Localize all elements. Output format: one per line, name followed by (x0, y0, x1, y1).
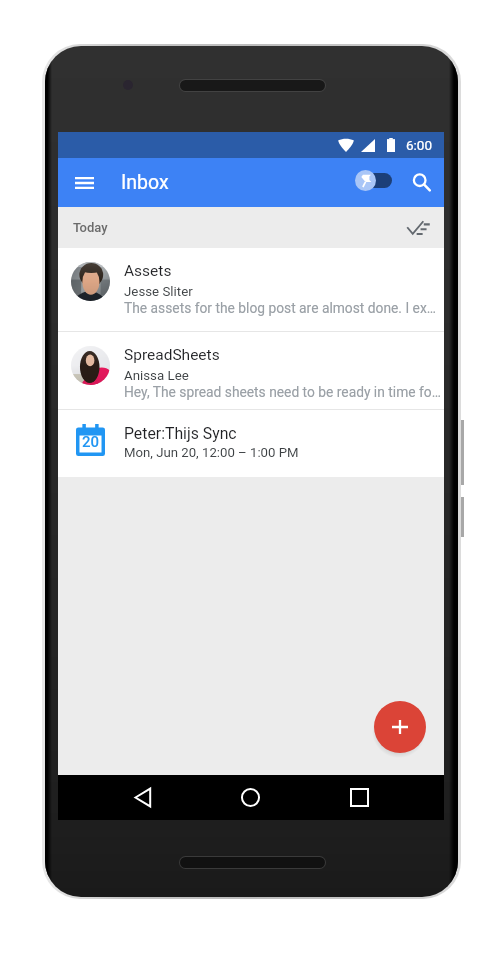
staticText: Hey, The spread sheets need to be ready … (124, 384, 441, 400)
button[interactable]: Back (119, 775, 166, 820)
staticText: Peter:Thijs Sync (124, 424, 237, 443)
button[interactable]: Home (227, 775, 274, 820)
staticText: Inbox (121, 171, 169, 194)
staticText: Anissa Lee (124, 368, 189, 384)
staticText: 6:00 (406, 137, 433, 153)
button[interactable]: Select all (398, 207, 439, 248)
button[interactable]: Compose (374, 701, 426, 753)
staticText: Jesse Sliter (124, 284, 193, 300)
button[interactable]: Assets (58, 248, 444, 331)
button[interactable]: SpreadSheets (58, 332, 444, 409)
button[interactable]: Recent apps (336, 775, 383, 820)
staticText: 20 (82, 433, 100, 451)
staticText: SpreadSheets (124, 346, 220, 364)
staticText: The assets for the blog post are almost … (124, 300, 436, 316)
staticText: Today (73, 220, 108, 235)
button[interactable]: Open navigation menu (58, 158, 110, 207)
staticText: Mon, Jun 20, 12:00 – 1:00 PM (124, 445, 299, 460)
button[interactable]: Pin toggle (347, 158, 403, 207)
staticText: Assets (124, 262, 172, 280)
button[interactable]: 20 (58, 410, 444, 477)
button[interactable]: Search (404, 158, 440, 207)
